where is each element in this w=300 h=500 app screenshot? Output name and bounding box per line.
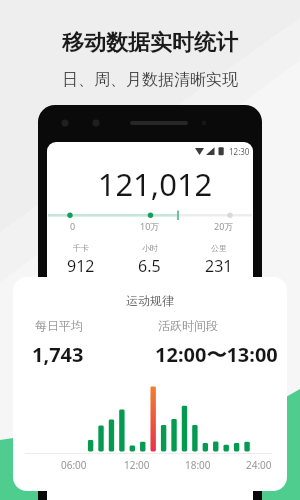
staticText: 06:00 <box>61 458 87 472</box>
staticText: 1,743 <box>32 341 84 368</box>
staticText: 18:00 <box>185 458 211 472</box>
staticText: 24:00 <box>246 458 272 472</box>
staticText: 日、周、月数据清晰实现 <box>0 70 300 90</box>
staticText: 6.5 <box>138 255 161 277</box>
staticText: 912 <box>67 255 95 277</box>
staticText: 12:30 <box>229 146 250 157</box>
staticText: 10万 <box>140 220 160 232</box>
staticText: 20万 <box>214 220 234 232</box>
staticText: 活跃时间段 <box>158 318 218 333</box>
staticText: 121,012 <box>52 163 253 205</box>
staticText: 运动规律 <box>13 293 287 308</box>
staticText: 每日平均 <box>35 318 83 333</box>
staticText: 公里 <box>211 243 227 253</box>
staticText: 12:00〜13:00 <box>155 341 278 368</box>
staticText: 12:00 <box>124 458 150 472</box>
staticText: 移动数据实时统计 <box>0 29 300 57</box>
staticText: 0 <box>70 220 76 232</box>
staticText: 千卡 <box>73 243 89 253</box>
staticText: 小时 <box>142 243 158 253</box>
staticText: 231 <box>205 255 233 277</box>
